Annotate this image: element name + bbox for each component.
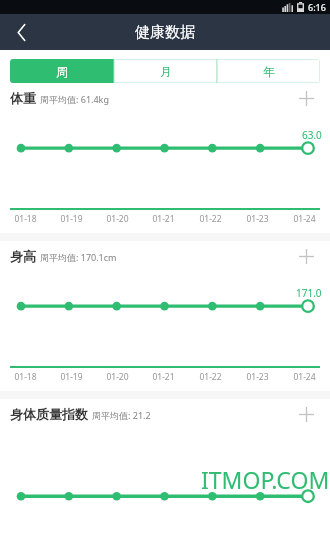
staticText: 身高 (10, 248, 36, 264)
staticText: 01-19 (60, 213, 83, 225)
staticText: 01-19 (60, 371, 83, 383)
staticText: 01-21 (152, 213, 175, 225)
staticText: 01-20 (106, 371, 129, 383)
staticText: 体重 (10, 90, 36, 106)
button[interactable]: Back (0, 14, 42, 50)
staticText: 01-23 (246, 371, 269, 383)
staticText: 健康数据 (135, 23, 195, 42)
button[interactable]: Add record (292, 400, 320, 428)
staticText: 01-18 (14, 213, 37, 225)
staticText: 6:16 (308, 1, 326, 13)
staticText: 01-22 (199, 371, 222, 383)
staticText: 周平均值: 21.2 (92, 409, 151, 421)
staticText: 周平均值: 170.1cm (40, 251, 117, 263)
button[interactable]: Add record (292, 242, 320, 270)
staticText: 63.0 (302, 128, 322, 142)
staticText: 年 (263, 64, 275, 79)
staticText: 01-22 (199, 213, 222, 225)
button[interactable]: Add record (292, 84, 320, 112)
staticText: 月 (160, 64, 172, 79)
staticText: 周 (56, 64, 68, 79)
button[interactable]: 周 (10, 59, 114, 83)
staticText: 周平均值: 61.4kg (40, 93, 109, 105)
staticText: 01-20 (106, 213, 129, 225)
staticText: 01-21 (152, 371, 175, 383)
button[interactable]: 月 (114, 59, 217, 83)
staticText: 01-24 (293, 213, 316, 225)
staticText: 01-23 (246, 213, 269, 225)
staticText: 01-18 (14, 371, 37, 383)
staticText: 01-24 (293, 371, 316, 383)
staticText: ITMOP.COM (201, 464, 330, 495)
button[interactable]: 年 (217, 59, 320, 83)
staticText: 身体质量指数 (10, 406, 88, 422)
staticText: 171.0 (296, 286, 322, 300)
